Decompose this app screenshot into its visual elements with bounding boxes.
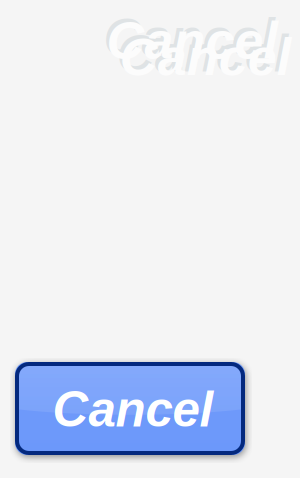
staticText: Cancel <box>120 28 291 86</box>
staticText: Cancel <box>52 382 213 437</box>
staticText: Cancel <box>103 8 274 66</box>
staticText: Cancel <box>117 24 288 83</box>
staticText: Cancel <box>106 11 277 70</box>
button[interactable]: Cancel <box>15 362 245 455</box>
